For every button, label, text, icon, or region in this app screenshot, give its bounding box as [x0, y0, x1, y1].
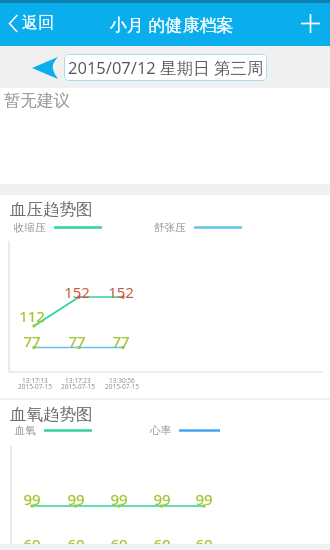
staticText: 血氧	[15, 424, 36, 437]
button[interactable]: Add record	[296, 9, 325, 38]
button[interactable]: 返回	[6, 9, 57, 37]
button[interactable]: Previous day	[32, 57, 58, 79]
staticText: 112	[19, 306, 45, 326]
button[interactable]: 2015/07/12 星期日 第三周	[64, 54, 267, 81]
staticText: 99	[67, 489, 85, 509]
staticText: 舒张压	[154, 221, 186, 234]
staticText: 返回	[22, 13, 54, 33]
staticText: 13:17:23	[65, 376, 91, 385]
staticText: 60	[195, 534, 213, 550]
staticText: 99	[23, 489, 41, 509]
staticText: 152	[64, 282, 90, 302]
staticText: 心率	[150, 424, 171, 437]
staticText: 152	[108, 282, 134, 302]
staticText: 60	[110, 534, 128, 550]
staticText: 收缩压	[14, 221, 46, 234]
staticText: 2015-07-15	[105, 382, 139, 391]
staticText: 血氧趋势图	[10, 404, 93, 425]
staticText: 暂无建议	[4, 90, 70, 111]
staticText: 77	[68, 331, 86, 351]
staticText: 60	[23, 534, 41, 550]
staticText: 2015/07/12 星期日 第三周	[68, 56, 264, 79]
staticText: 13:30:56	[109, 376, 135, 385]
staticText: 99	[195, 489, 213, 509]
staticText: 血压趋势图	[10, 199, 93, 220]
staticText: 60	[67, 534, 85, 550]
staticText: 99	[110, 489, 128, 509]
staticText: 77	[23, 331, 41, 351]
staticText: 99	[153, 489, 171, 509]
staticText: 60	[153, 534, 171, 550]
staticText: 77	[112, 331, 130, 351]
staticText: 2015-07-15	[61, 382, 95, 391]
staticText: 13:17:13	[22, 376, 48, 385]
staticText: 2015-07-15	[18, 382, 52, 391]
staticText: 小月 的健康档案	[110, 13, 234, 36]
